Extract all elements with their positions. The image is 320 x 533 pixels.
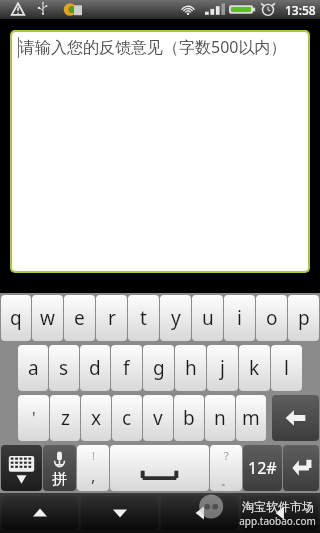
button[interactable]: o	[256, 295, 287, 341]
button[interactable]: m	[236, 395, 266, 441]
button[interactable]: '	[18, 395, 49, 441]
staticText: z	[61, 405, 70, 431]
staticText: a	[28, 355, 39, 381]
staticText: 13:58	[285, 2, 316, 18]
staticText: o	[266, 305, 278, 331]
staticText: d	[89, 355, 101, 381]
staticText: !	[92, 448, 95, 463]
button[interactable]: f	[111, 345, 142, 391]
button[interactable]: x	[81, 395, 111, 441]
staticText: app.taobao.com	[239, 514, 316, 528]
button[interactable]: z	[50, 395, 80, 441]
button[interactable]: 12#	[243, 445, 282, 491]
button[interactable]: j	[207, 345, 238, 391]
button[interactable]: Scroll down	[81, 496, 158, 530]
staticText: 请输入您的反馈意见（字数500以内）	[19, 36, 287, 58]
button[interactable]: t	[128, 295, 159, 341]
staticText: p	[298, 305, 310, 331]
button[interactable]: d	[80, 345, 110, 391]
staticText: n	[214, 405, 226, 431]
staticText: c	[122, 405, 132, 431]
staticText: v	[153, 405, 163, 431]
button[interactable]: Scroll up	[2, 496, 78, 530]
staticText: j	[220, 355, 225, 381]
button[interactable]: h	[175, 345, 206, 391]
button[interactable]: e	[64, 295, 95, 341]
button[interactable]: Menu	[241, 496, 318, 530]
button[interactable]: Back	[161, 496, 238, 530]
staticText: r	[108, 305, 116, 331]
staticText: w	[40, 305, 55, 331]
button[interactable]: i	[224, 295, 255, 341]
button[interactable]: l	[271, 345, 302, 391]
button[interactable]: a	[18, 345, 48, 391]
staticText: 12#	[248, 457, 277, 479]
button[interactable]: Space	[110, 445, 209, 491]
staticText: 。	[221, 474, 232, 488]
staticText: b	[183, 405, 195, 431]
staticText: u	[202, 305, 214, 331]
button[interactable]: Comma	[77, 445, 109, 491]
staticText: q	[10, 305, 22, 331]
staticText: m	[242, 405, 260, 431]
button[interactable]: Backspace	[272, 395, 319, 441]
staticText: f	[123, 355, 130, 381]
button[interactable]: g	[143, 345, 174, 391]
staticText: ?	[224, 448, 229, 463]
button[interactable]: r	[96, 295, 127, 341]
button[interactable]: s	[49, 345, 79, 391]
button[interactable]: p	[288, 295, 319, 341]
staticText: t	[140, 305, 147, 331]
staticText: i	[237, 305, 242, 331]
button[interactable]: c	[112, 395, 142, 441]
button[interactable]: Hide keyboard	[1, 445, 42, 491]
button[interactable]: y	[160, 295, 191, 341]
button[interactable]: q	[1, 295, 31, 341]
staticText: s	[59, 355, 69, 381]
staticText: h	[185, 355, 197, 381]
button[interactable]: Enter	[283, 445, 319, 491]
button[interactable]: u	[192, 295, 223, 341]
staticText: 淘宝软件市场	[242, 499, 314, 514]
button[interactable]: 请输入您的反馈意见（字数500以内）	[12, 32, 308, 271]
button[interactable]: v	[143, 395, 173, 441]
staticText: '	[32, 407, 36, 429]
staticText: ,	[91, 464, 96, 487]
button[interactable]: k	[239, 345, 270, 391]
button[interactable]: Pinyin input	[43, 445, 76, 491]
button[interactable]: n	[205, 395, 235, 441]
button[interactable]: w	[32, 295, 63, 341]
staticText: e	[74, 305, 85, 331]
staticText: 拼	[52, 470, 67, 489]
staticText: k	[249, 355, 260, 381]
staticText: l	[284, 355, 289, 381]
staticText: g	[153, 355, 165, 381]
staticText: y	[171, 305, 181, 331]
button[interactable]: Period	[210, 445, 242, 491]
button[interactable]: b	[174, 395, 204, 441]
staticText: x	[91, 405, 102, 431]
